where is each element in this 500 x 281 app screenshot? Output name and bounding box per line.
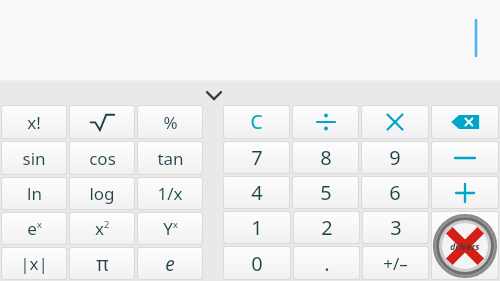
staticText: log	[89, 182, 115, 205]
button[interactable]	[70, 106, 134, 138]
button[interactable]: .	[294, 247, 359, 279]
staticText: π	[96, 251, 109, 277]
button[interactable]: 4	[224, 177, 289, 208]
staticText: cos	[89, 147, 116, 170]
button[interactable]: Divide	[293, 106, 358, 138]
staticText: x	[37, 218, 42, 231]
staticText: 2	[321, 214, 333, 241]
staticText: 6	[389, 179, 401, 206]
button[interactable]: +/–	[363, 247, 428, 279]
staticText: x	[173, 218, 178, 231]
staticText: sin	[22, 147, 46, 170]
staticText: 8	[320, 144, 332, 171]
staticText: 1	[251, 214, 263, 241]
staticText: x	[95, 217, 104, 240]
button[interactable]: Collapse keypad	[0, 82, 500, 104]
button[interactable]: Plus	[432, 177, 498, 208]
button[interactable]: ln	[2, 178, 66, 209]
button[interactable]: 1/x	[138, 178, 202, 209]
staticText: e	[27, 217, 37, 240]
staticText: |x|	[20, 252, 48, 275]
button[interactable]: 8	[293, 142, 358, 173]
button[interactable]: 1	[224, 212, 290, 243]
staticText: .	[324, 250, 330, 277]
staticText: 3	[390, 214, 402, 241]
button[interactable]: 6	[362, 177, 428, 208]
button[interactable]: sin	[2, 142, 66, 174]
button[interactable]: π	[70, 248, 134, 279]
button[interactable]: 2	[294, 212, 359, 243]
staticText: e	[165, 251, 175, 277]
staticText: 5	[320, 179, 332, 206]
staticText: 9	[389, 144, 401, 171]
staticText: 4	[251, 179, 263, 206]
staticText: tan	[157, 147, 184, 170]
button[interactable]: %	[138, 106, 202, 138]
button[interactable]: x!	[2, 106, 66, 138]
staticText: 1/x	[157, 182, 183, 205]
button[interactable]: Backspace	[432, 106, 498, 138]
button[interactable]: e	[2, 213, 66, 244]
staticText: +/–	[383, 252, 408, 275]
staticText: ln	[27, 182, 42, 205]
button[interactable]: 5	[293, 177, 358, 208]
staticText: 7	[251, 144, 263, 171]
button[interactable]: Multiply	[362, 106, 428, 138]
button[interactable]: |x|	[2, 248, 66, 279]
staticText: C	[250, 109, 263, 135]
button[interactable]: log	[70, 178, 134, 209]
button[interactable]: 7	[224, 142, 289, 173]
staticText: 0	[251, 250, 263, 277]
button[interactable]: e	[138, 248, 202, 279]
button[interactable]: 0	[224, 247, 290, 279]
staticText: %	[163, 111, 178, 134]
button[interactable]: Minus	[432, 142, 498, 173]
button[interactable]: cos	[70, 142, 134, 174]
button[interactable]: 3	[363, 212, 428, 243]
button[interactable]: Y	[138, 213, 202, 244]
button[interactable]: Equals	[432, 212, 498, 279]
staticText: Y	[163, 217, 173, 240]
button[interactable]: C	[224, 106, 289, 138]
staticText: x!	[27, 111, 41, 134]
button[interactable]: x	[70, 213, 134, 244]
button[interactable]: 9	[362, 142, 428, 173]
staticText: drivers	[450, 240, 480, 252]
staticText: 2	[104, 218, 110, 231]
button[interactable]: tan	[138, 142, 202, 174]
